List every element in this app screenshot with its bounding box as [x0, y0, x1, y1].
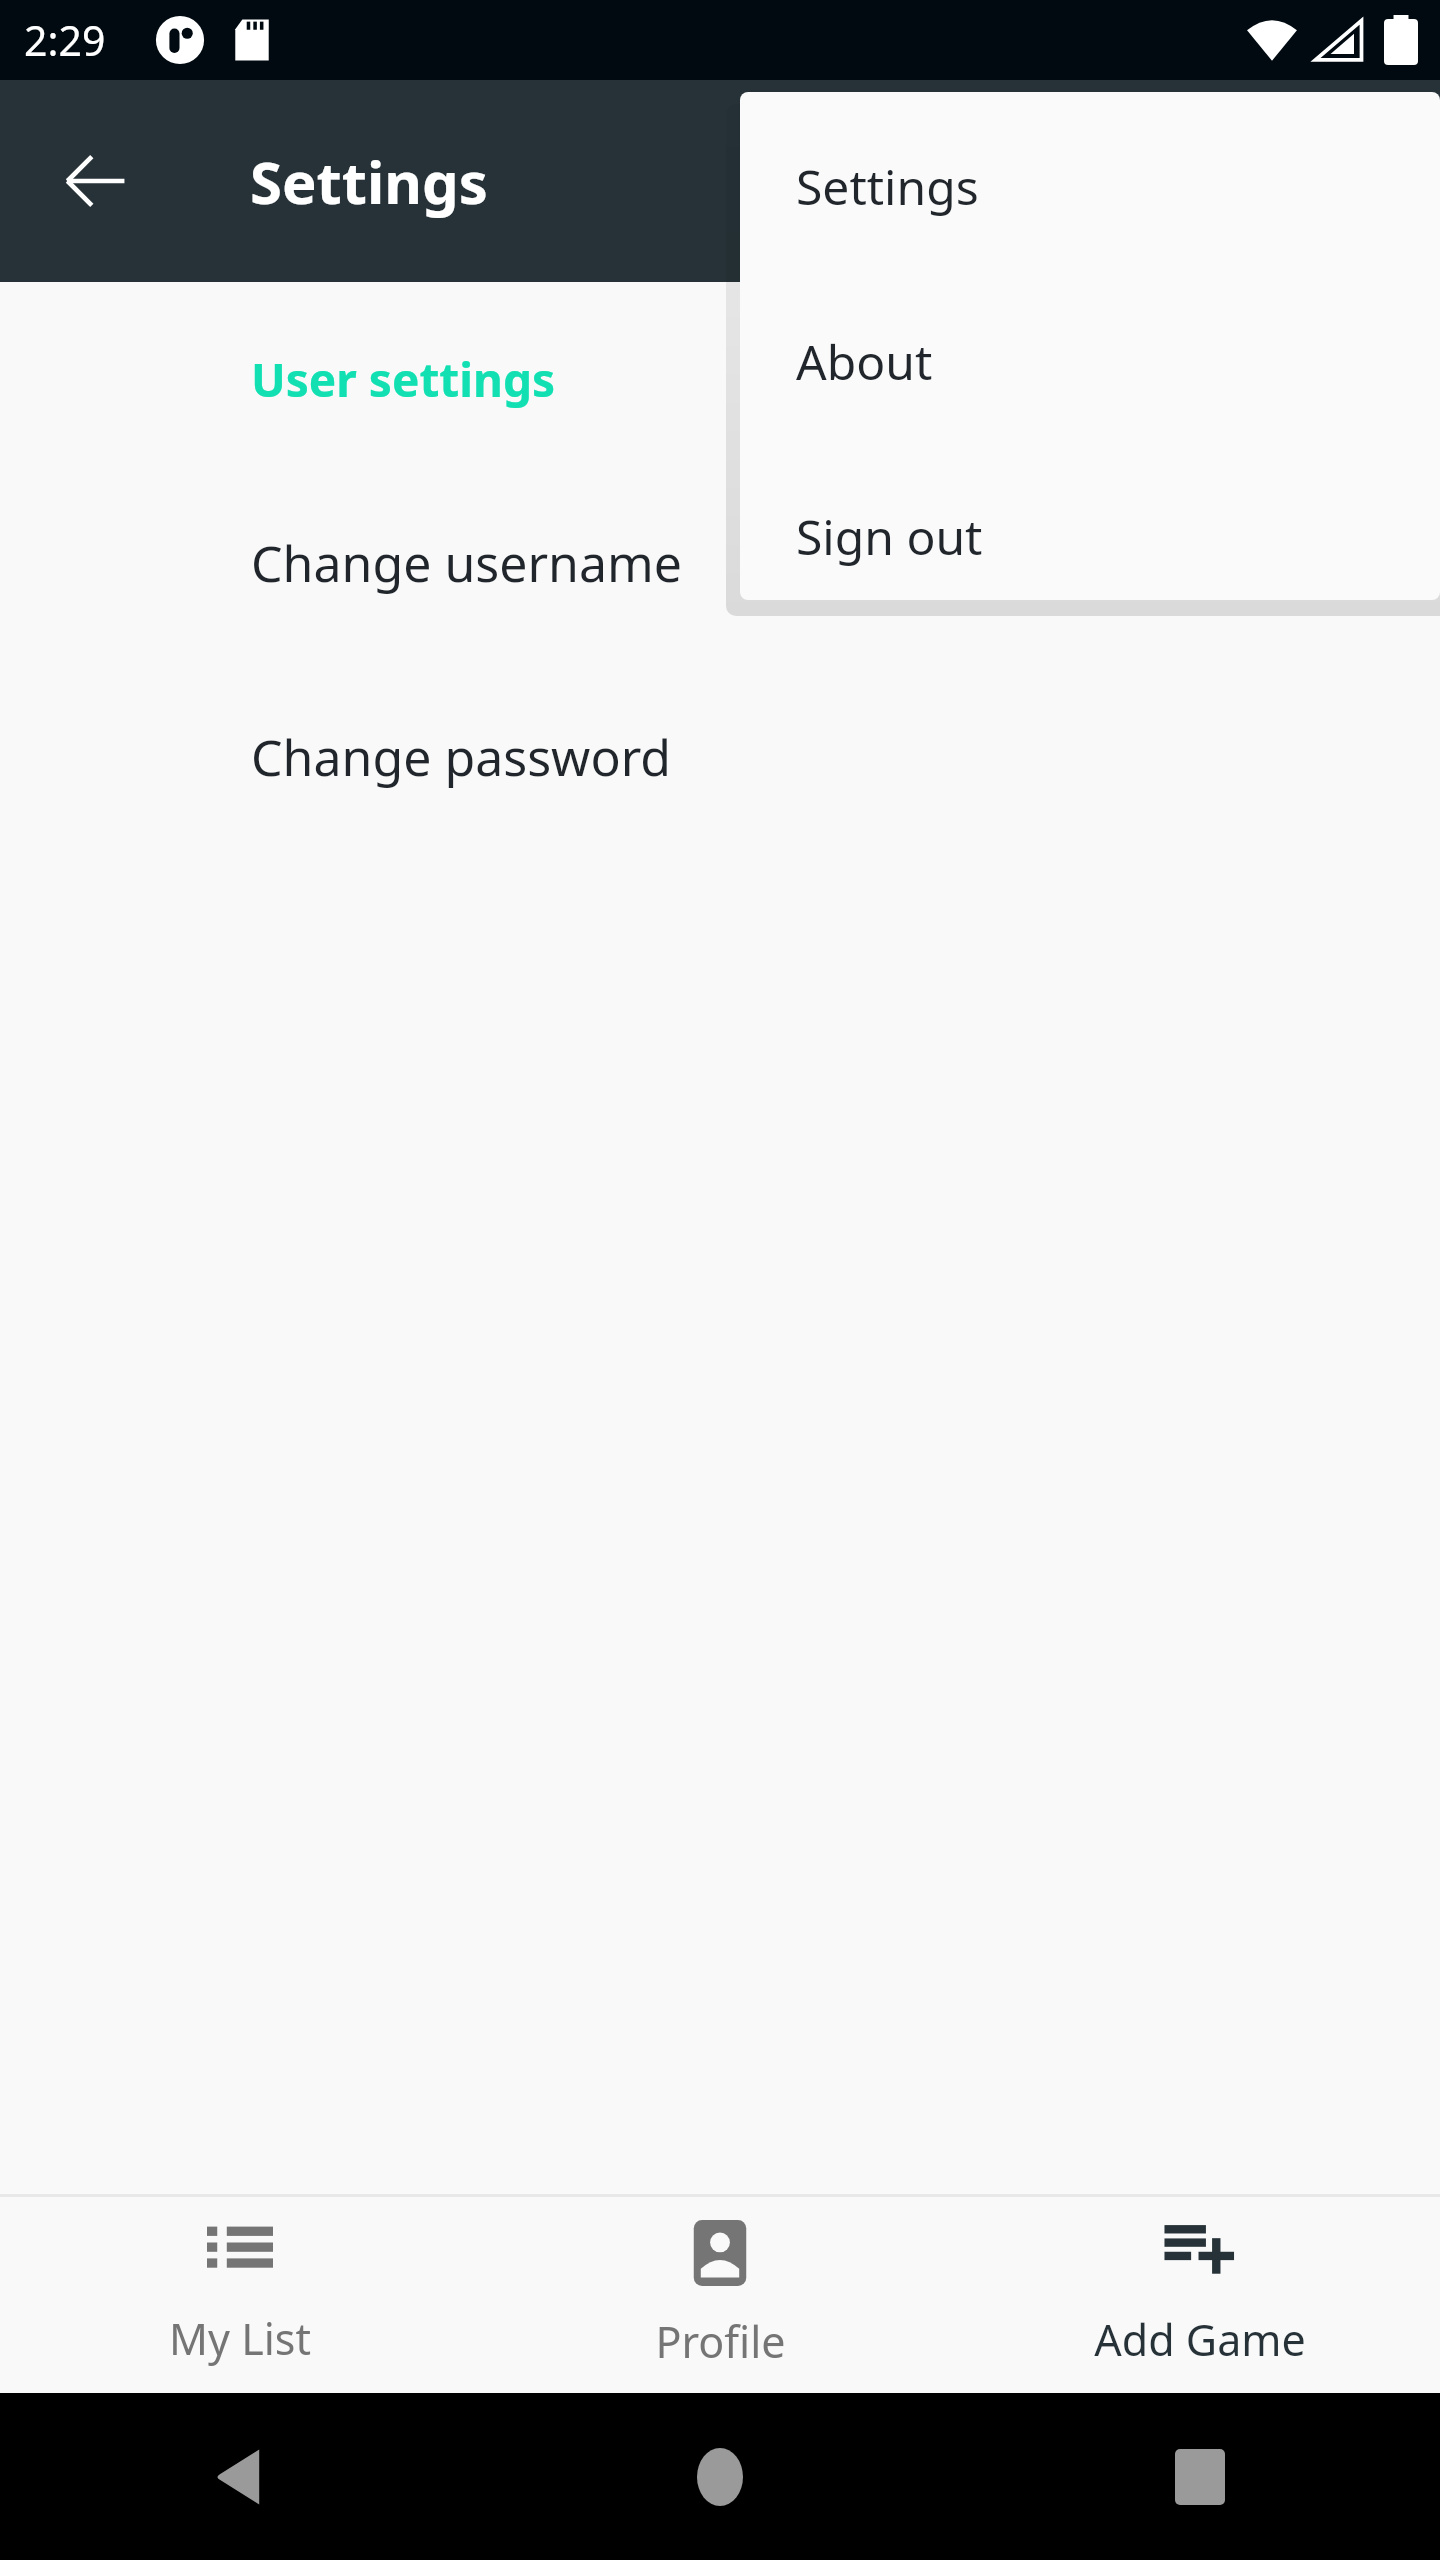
staticText: Change username — [251, 529, 682, 597]
button[interactable]: Back — [0, 2393, 480, 2560]
staticText: Add Game — [1094, 2310, 1306, 2369]
staticText: Change password — [251, 723, 672, 791]
button[interactable]: Change username — [0, 529, 1440, 597]
button[interactable]: Add Game — [960, 2197, 1440, 2393]
button[interactable]: Profile — [480, 2197, 960, 2393]
button[interactable]: Change password — [0, 723, 1440, 791]
button[interactable]: User settings — [0, 348, 1440, 411]
staticText: Settings — [250, 142, 488, 221]
staticText: My List — [169, 2309, 311, 2368]
staticText: About — [796, 329, 933, 394]
button[interactable]: Recent apps — [960, 2393, 1440, 2560]
staticText: User settings — [251, 348, 556, 411]
staticText: Settings — [796, 154, 979, 219]
button[interactable]: Home — [480, 2393, 960, 2560]
button[interactable]: About — [740, 329, 1440, 394]
button[interactable]: Settings — [740, 154, 1440, 219]
staticText: Profile — [655, 2312, 786, 2371]
button[interactable]: My List — [0, 2197, 480, 2393]
button[interactable]: Sign out — [740, 504, 1440, 569]
staticText: Sign out — [796, 504, 983, 569]
button[interactable]: Navigate up — [38, 124, 152, 238]
staticText: 2:29 — [24, 12, 106, 68]
